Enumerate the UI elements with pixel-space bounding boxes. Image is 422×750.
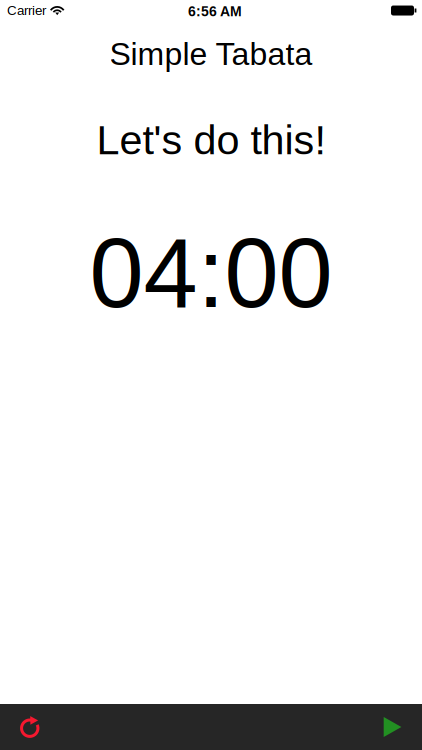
button[interactable]: Start (362, 704, 422, 750)
staticText: 04:00 (89, 219, 332, 328)
staticText: Let's do this! (96, 117, 325, 163)
staticText: Simple Tabata (109, 36, 312, 72)
staticText: Carrier (7, 3, 46, 18)
staticText: 6:56 AM (188, 3, 242, 19)
button[interactable]: Reset (0, 704, 60, 750)
